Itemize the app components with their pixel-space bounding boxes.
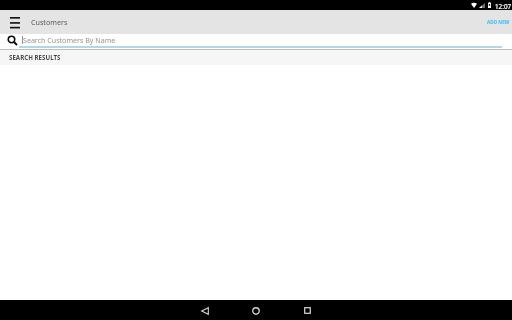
- staticText: 12:07: [495, 2, 512, 11]
- staticText: SEARCH RESULTS: [9, 53, 61, 61]
- button[interactable]: Recent apps: [293, 301, 321, 319]
- staticText: ADD NEW: [487, 19, 510, 25]
- staticText: Customers: [31, 17, 68, 27]
- button[interactable]: ADD NEW: [477, 13, 512, 31]
- button[interactable]: Open navigation menu: [10, 10, 20, 34]
- button[interactable]: Home: [242, 302, 270, 320]
- button[interactable]: Search Customers By Name: [0, 34, 512, 46]
- staticText: Search Customers By Name: [23, 35, 116, 45]
- button[interactable]: Back: [191, 302, 219, 320]
